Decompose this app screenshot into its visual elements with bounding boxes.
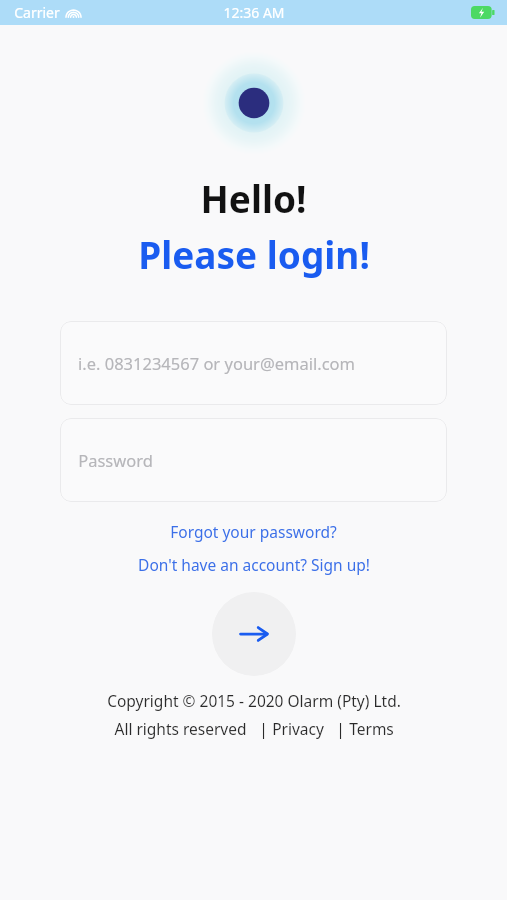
- button[interactable]: Privacy: [272, 718, 324, 739]
- staticText: |: [324, 718, 349, 739]
- staticText: Terms: [349, 718, 394, 739]
- staticText: Hello!: [200, 173, 307, 223]
- staticText: All rights reserved: [114, 718, 247, 739]
- button[interactable]: i.e. 0831234567 or your@email.com: [60, 321, 447, 405]
- staticText: Please login!: [138, 229, 370, 279]
- staticText: Carrier: [14, 3, 60, 22]
- button[interactable]: Log in: [212, 592, 296, 676]
- staticText: Password: [78, 449, 153, 471]
- button[interactable]: Don't have an account? Sign up!: [130, 551, 378, 578]
- staticText: i.e. 0831234567 or your@email.com: [78, 352, 355, 374]
- staticText: 12:36 AM: [223, 3, 285, 22]
- staticText: Copyright © 2015 - 2020 Olarm (Pty) Ltd.: [107, 690, 401, 711]
- staticText: Privacy: [272, 718, 324, 739]
- staticText: Don't have an account? Sign up!: [138, 554, 370, 575]
- staticText: |: [247, 718, 272, 739]
- button[interactable]: Terms: [349, 718, 394, 739]
- button[interactable]: Forgot your password?: [162, 518, 345, 545]
- button[interactable]: Password: [60, 418, 447, 502]
- staticText: Forgot your password?: [170, 521, 337, 542]
